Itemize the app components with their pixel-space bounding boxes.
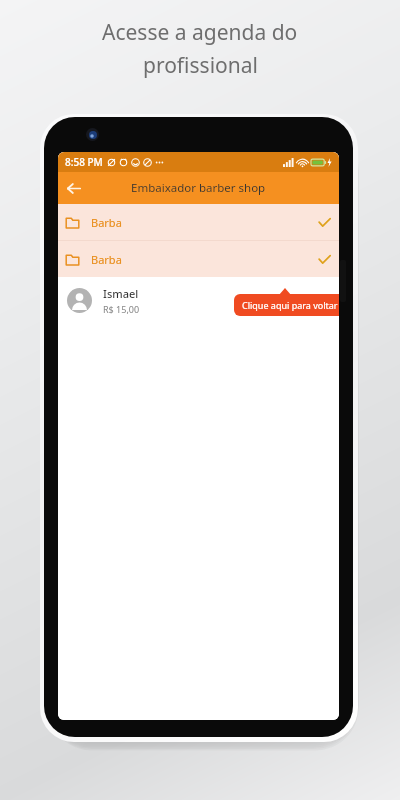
button[interactable]: Barba [58,241,339,277]
staticText: Barba [91,252,122,267]
staticText: Embaixador barber shop [131,180,266,196]
staticText: Clique aqui para voltar [242,299,338,311]
button[interactable]: Barba [58,204,339,240]
staticText: 8:58 PM [65,155,103,169]
staticText: Acesse a agenda do [102,18,298,47]
staticText: Barba [91,215,122,230]
staticText: profissional [143,51,258,80]
button[interactable]: Voltar [58,173,88,203]
button[interactable]: Clique aqui para voltar [234,294,339,316]
staticText: Ismael [103,286,139,301]
button[interactable]: Ismael [58,277,339,323]
staticText: R$ 15,00 [103,303,140,315]
